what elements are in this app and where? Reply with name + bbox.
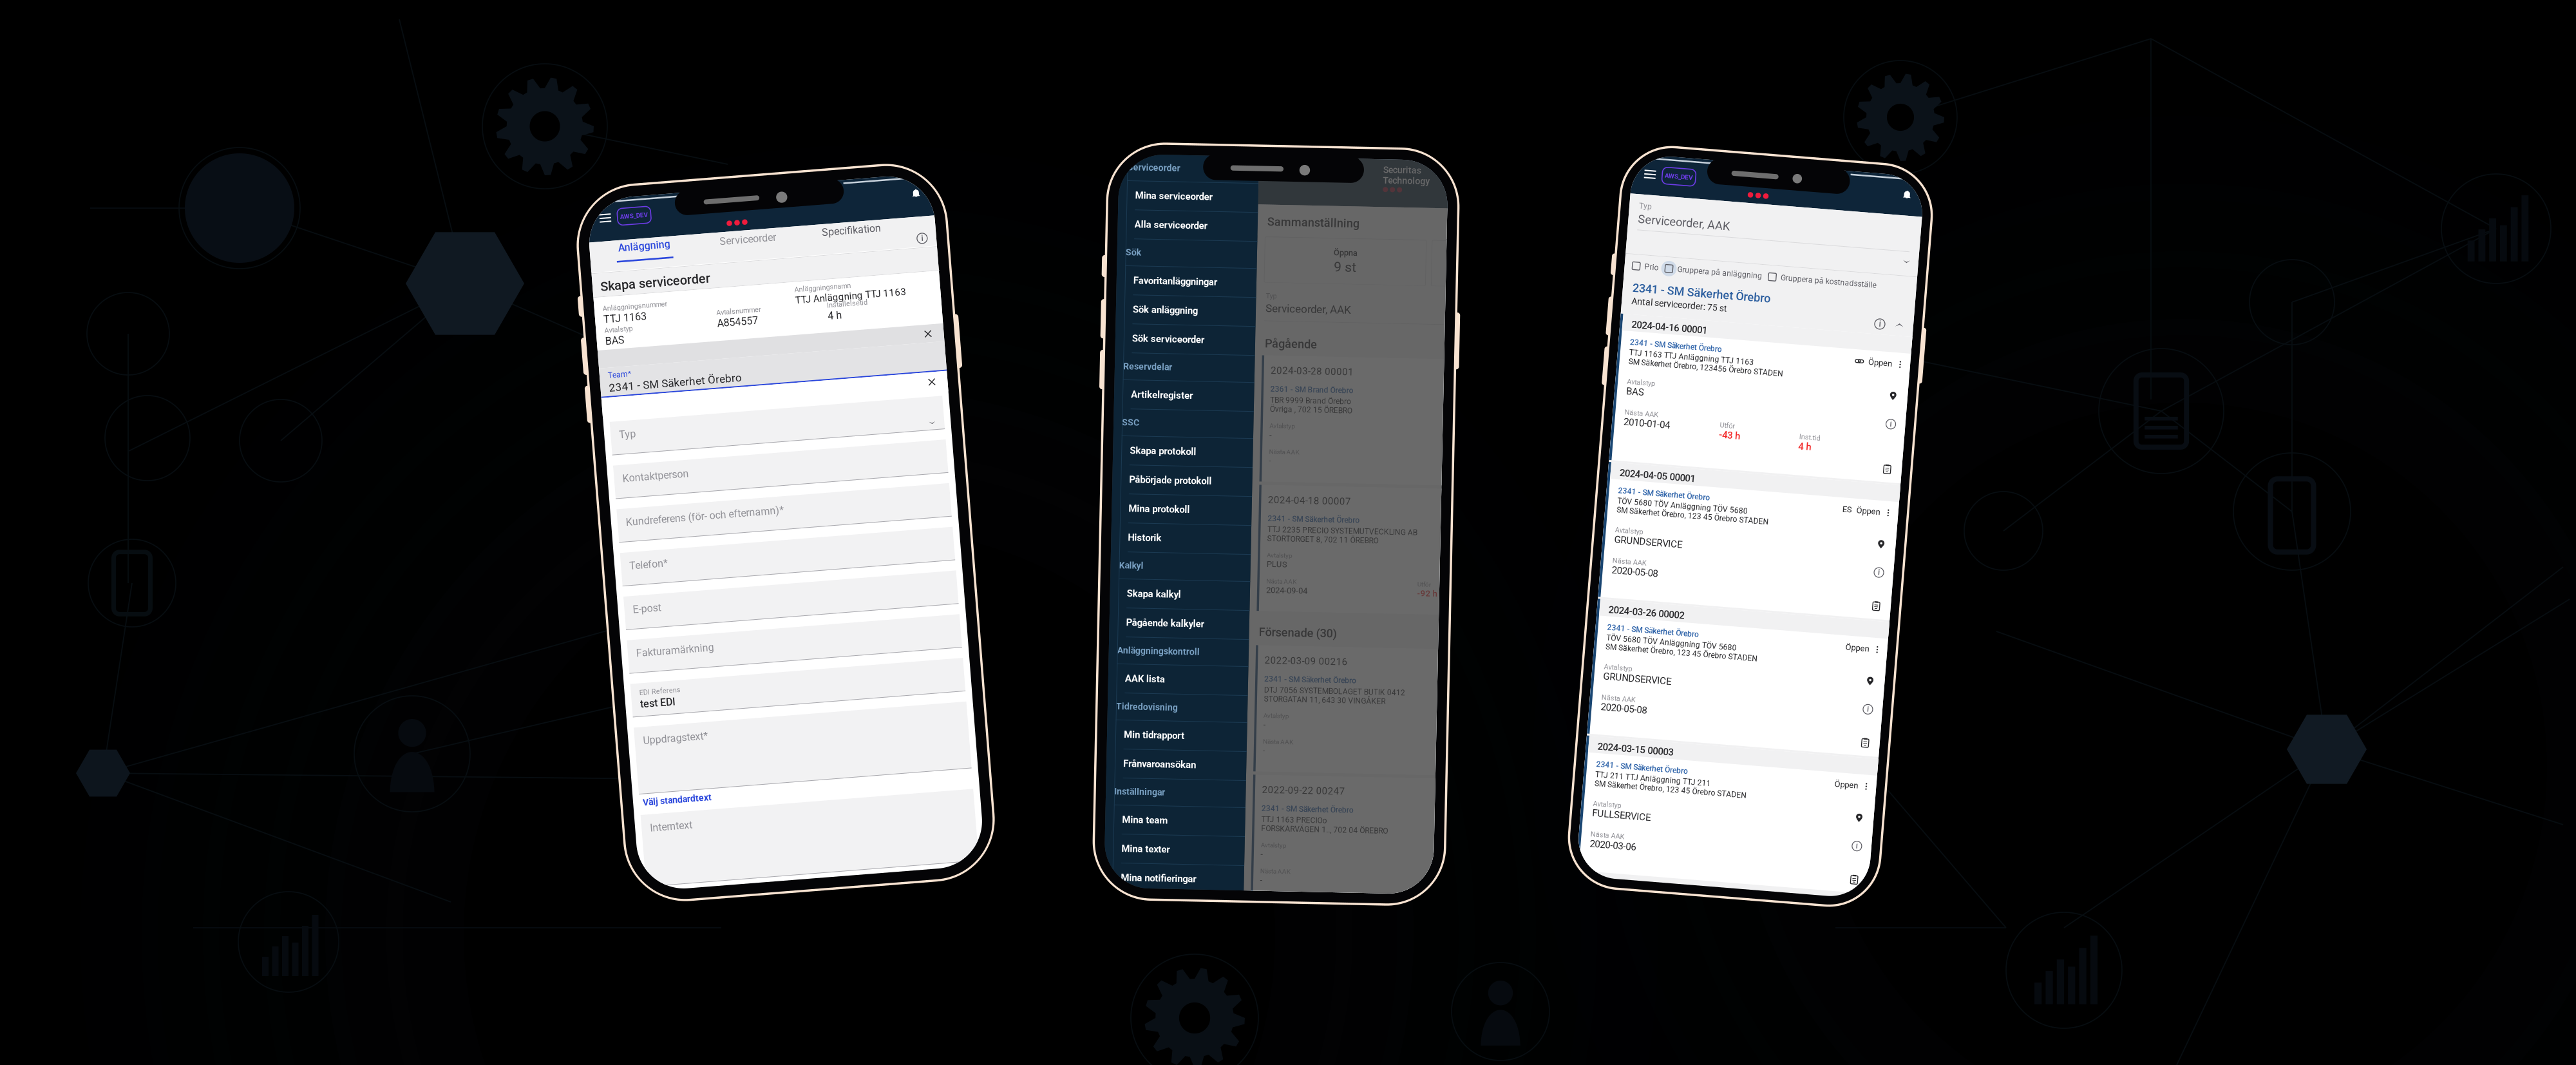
button[interactable]: Notifications [931, 192, 953, 218]
button[interactable]: Kontaktperson [619, 452, 952, 486]
staticText: DTJ 7056 SYSTEMBOLAGET BUTIK 0412 [1268, 686, 1409, 695]
button[interactable]: E-post [619, 584, 952, 617]
button[interactable]: Menu [618, 192, 643, 218]
button[interactable]: Prio [1608, 268, 1638, 284]
staticText: 2020-05-08 [1616, 713, 1662, 724]
button[interactable]: Serviceorder [719, 228, 823, 260]
staticText: GRUNDSERVICE [1616, 545, 1684, 556]
button[interactable]: Skapa kalkyl [1111, 582, 1251, 611]
button[interactable]: More options [1883, 635, 1890, 643]
button[interactable]: Anläggning [615, 230, 719, 259]
button[interactable]: AWS_DEV [643, 196, 676, 213]
button[interactable]: AAK lista [1111, 667, 1251, 696]
button[interactable]: Öppna [1259, 237, 1420, 283]
staticText: 2341 - SM Säkerhet Örebro [1616, 634, 1708, 643]
button[interactable]: Clear [938, 341, 948, 350]
button[interactable]: Frånvaroansökan [1111, 752, 1251, 781]
button[interactable]: Skapa protokoll [1111, 439, 1251, 468]
button[interactable]: Kundreferens (för- och efternamn)* [619, 496, 952, 530]
button[interactable]: Information [940, 245, 950, 255]
staticText: Skapa serviceorder [620, 265, 730, 280]
staticText: TÖV 5680 TÖV Anläggning TÖV 5680 [1616, 507, 1746, 516]
button[interactable]: 2024-03-26 00002 [1604, 611, 1897, 746]
staticText: STORGATAN 11, 643 30 VINGÅKER [1268, 695, 1389, 704]
button[interactable]: Menu [1610, 171, 1634, 196]
button[interactable]: 2024-04-16 00001 [1604, 325, 1897, 471]
button[interactable]: EDI Referens [619, 671, 952, 705]
staticText: Specifikation [845, 230, 904, 242]
staticText: 2341 - SM Säkerhet Örebro [1616, 771, 1708, 780]
staticText: Favoritanläggningar [1128, 278, 1212, 289]
staticText: Frånvaroansökan [1128, 761, 1201, 772]
button[interactable]: 2024-03-15 00003 [1604, 748, 1897, 883]
button[interactable]: Favoritanläggningar [1111, 269, 1251, 298]
button[interactable]: Mina texter [1111, 838, 1251, 866]
button[interactable]: Clear [938, 389, 948, 399]
button[interactable]: More options [1883, 498, 1890, 505]
staticText: 2024-04-05 00001 [1616, 478, 1692, 489]
staticText: 2341 - SM Säkerhet Örebro [1616, 497, 1708, 506]
button[interactable]: Mina protokoll [1111, 497, 1251, 526]
button[interactable]: Historik [1111, 526, 1251, 555]
staticText: Nästa AAK [1268, 867, 1298, 875]
button[interactable]: Protocol [1877, 865, 1887, 875]
button[interactable]: Alla serviceorder [1111, 213, 1251, 242]
button[interactable]: Specifikation [823, 229, 927, 259]
button[interactable]: Gruppera på anläggning [1641, 268, 1742, 284]
button[interactable]: Interntext [619, 803, 952, 875]
staticText: Mina team [1128, 817, 1174, 828]
button[interactable]: Location [1877, 666, 1887, 676]
staticText: Anläggningsnummer [621, 291, 686, 299]
button[interactable]: AWS_DEV [1634, 175, 1668, 192]
staticText: 2361 - SM Brand Örebro [1268, 385, 1351, 394]
button[interactable]: Artikelregister [1111, 383, 1251, 412]
staticText: Anläggningskontroll [1120, 648, 1202, 659]
staticText: TTJ Anläggning TTJ 1163 [813, 296, 925, 308]
staticText: PLUS [1268, 559, 1288, 569]
button[interactable]: Gruppera på kostnadsställe [1744, 268, 1857, 284]
button[interactable]: Protocol [1877, 728, 1887, 738]
button[interactable]: Information [1877, 832, 1887, 841]
button[interactable]: Min tidrapport [1111, 723, 1251, 752]
button[interactable]: Välj standardtext [612, 778, 969, 803]
button[interactable]: 2024-04-18 00007 [1259, 485, 1573, 611]
button[interactable]: More options [1883, 349, 1890, 356]
button[interactable]: 2022-03-09 00216 [1259, 646, 1573, 772]
button[interactable]: Pågående kalkyler [1111, 611, 1251, 640]
staticText: Min tidrapport [1128, 732, 1189, 743]
staticText: TÖV 5680 TÖV Anläggning TÖV 5680 [1616, 644, 1746, 653]
button[interactable]: Notifications [1869, 171, 1891, 196]
button[interactable]: Mina notifieringar [1111, 866, 1251, 895]
button[interactable]: 2022-09-22 00247 [1259, 775, 1573, 901]
staticText: Serviceorder, AAK [1614, 222, 1706, 236]
button[interactable]: Telefon* [619, 540, 952, 573]
button[interactable]: Information [1877, 694, 1887, 704]
button[interactable]: Location [1877, 803, 1887, 813]
button[interactable]: Fakturamärkning [619, 627, 952, 661]
button[interactable]: 2024-03-28 00001 [1259, 356, 1573, 482]
staticText: Skapa protokoll [1128, 448, 1195, 459]
staticText: TTJ 2235 PRECIO SYSTEMUTVECKLING AB [1268, 525, 1418, 534]
button[interactable]: Sök serviceorder [1111, 327, 1251, 356]
button[interactable]: Mina team [1111, 809, 1251, 838]
button[interactable]: Sök anläggning [1111, 298, 1251, 327]
button[interactable]: Påbörjade protokoll [1111, 468, 1251, 497]
button[interactable]: Mina serviceorder [1111, 184, 1251, 213]
staticText: Nästa AAK [1616, 567, 1650, 575]
button[interactable]: 2024-04-05 00001 [1604, 473, 1897, 609]
button[interactable]: More options [1883, 773, 1890, 780]
button[interactable]: Uppdragstext* [619, 715, 952, 782]
button[interactable]: Typ [619, 408, 952, 442]
staticText: Avtalstyp [621, 313, 649, 321]
